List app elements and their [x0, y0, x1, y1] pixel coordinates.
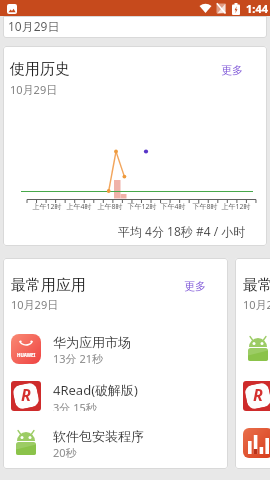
staticText: 华为应用市场	[53, 334, 131, 350]
staticText: 下午4时	[155, 202, 191, 212]
button[interactable]: 最常用应用	[3, 258, 228, 469]
staticText: 软件包安装程序	[53, 428, 144, 444]
button[interactable]: 使用历史	[3, 46, 267, 246]
staticText: 下午8时	[187, 202, 223, 212]
staticText: R	[253, 384, 263, 406]
staticText: 下午12时	[124, 202, 160, 212]
staticText: 10月29日	[10, 82, 58, 97]
staticText: 13分 21秒	[53, 351, 104, 364]
staticText: 平均 4分 18秒 #4 / 小时	[118, 223, 246, 239]
staticText: HUAWEI	[17, 352, 36, 358]
staticText: 上午4时	[61, 202, 97, 212]
staticText: 10月29日	[8, 18, 60, 34]
staticText: 1:44	[246, 1, 268, 16]
button[interactable]: 使用时间	[243, 428, 270, 458]
button[interactable]: 最常用应用	[235, 258, 270, 469]
staticText: 最常用应用	[11, 276, 86, 295]
staticText: 4Read(破解版)	[53, 381, 138, 399]
staticText: 上午12时	[29, 202, 65, 212]
staticText: 最常用应用	[243, 276, 270, 295]
staticText: 使用历史	[10, 60, 70, 79]
button[interactable]: R	[11, 381, 138, 411]
staticText: 上午8时	[92, 202, 128, 212]
button[interactable]: 软件包安装程序	[11, 428, 144, 458]
button[interactable]: 更多	[221, 63, 243, 77]
staticText: 10月29日	[11, 297, 59, 312]
staticText: 3分 15秒	[53, 400, 97, 411]
button[interactable]: HUAWEI	[11, 334, 131, 364]
button[interactable]: R	[243, 381, 270, 411]
staticText: 10月29日	[243, 297, 270, 312]
button[interactable]: 软件包安装程序	[243, 334, 270, 364]
staticText: R	[21, 384, 31, 406]
button[interactable]: 更多	[184, 279, 206, 293]
staticText: 20秒	[53, 445, 77, 458]
staticText: 上午12时	[218, 202, 254, 212]
